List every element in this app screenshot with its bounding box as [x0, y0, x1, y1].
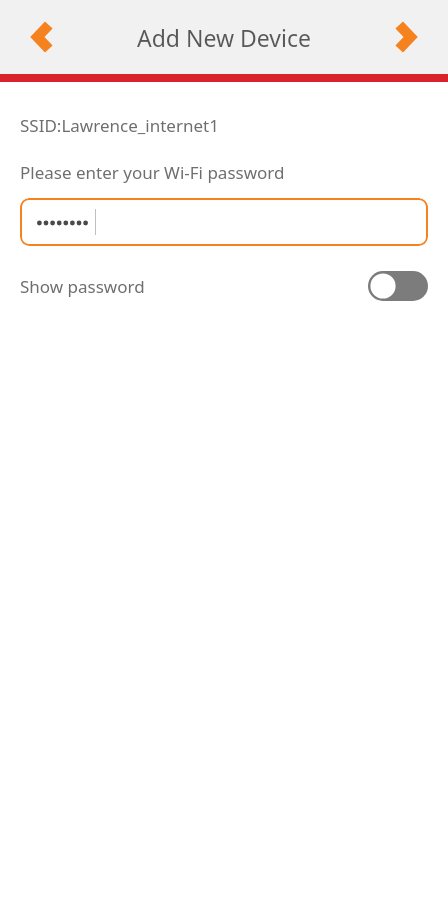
staticText: Add New Device — [137, 22, 311, 53]
button[interactable]: Next — [372, 5, 436, 69]
button[interactable]: Back — [12, 5, 76, 69]
staticText: Please enter your Wi-Fi password — [20, 161, 285, 184]
staticText: Show password — [20, 275, 145, 298]
staticText: SSID:Lawrence_internet1 — [20, 114, 219, 137]
button[interactable] — [20, 198, 428, 246]
button[interactable]: Show password — [20, 264, 428, 308]
other: Show password toggle — [368, 271, 428, 301]
